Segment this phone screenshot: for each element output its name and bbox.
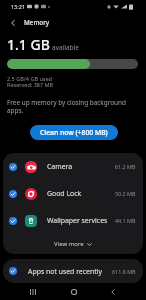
staticText: Reserved: 387 MB bbox=[7, 81, 54, 88]
button[interactable]: Navigate up bbox=[5, 15, 20, 30]
button[interactable]: Recent apps bbox=[21, 283, 45, 300]
staticText: 1.1 GB bbox=[7, 35, 50, 54]
button[interactable]: Wallpaper services bbox=[3, 207, 143, 234]
button[interactable]: View more bbox=[3, 234, 143, 254]
staticText: 61.2 MB bbox=[115, 163, 136, 170]
staticText: 611.8 MB bbox=[112, 268, 136, 275]
staticText: Good Lock bbox=[47, 189, 82, 198]
staticText: 50.2 MB bbox=[115, 190, 136, 197]
staticText: 2.5 GB/4 GB used bbox=[7, 75, 52, 82]
button[interactable]: Clean now (+800 MB) bbox=[30, 125, 118, 140]
staticText: View more bbox=[54, 240, 84, 248]
button[interactable]: Back bbox=[101, 283, 125, 300]
staticText: Free up memory by closing background app… bbox=[7, 98, 139, 115]
staticText: Apps not used recently bbox=[28, 267, 102, 276]
staticText: 13:21 bbox=[11, 3, 25, 10]
staticText: Camera bbox=[47, 162, 73, 171]
button[interactable]: Camera bbox=[3, 153, 143, 180]
button[interactable]: Good Lock bbox=[3, 180, 143, 207]
staticText: available bbox=[52, 43, 79, 52]
staticText: Memory bbox=[24, 18, 50, 27]
staticText: Wallpaper services bbox=[47, 216, 108, 225]
staticText: 44.1 MB bbox=[115, 217, 136, 224]
staticText: Clean now (+800 MB) bbox=[40, 128, 108, 137]
button[interactable]: Apps not used recently bbox=[3, 259, 143, 283]
button[interactable]: Home bbox=[62, 283, 86, 300]
